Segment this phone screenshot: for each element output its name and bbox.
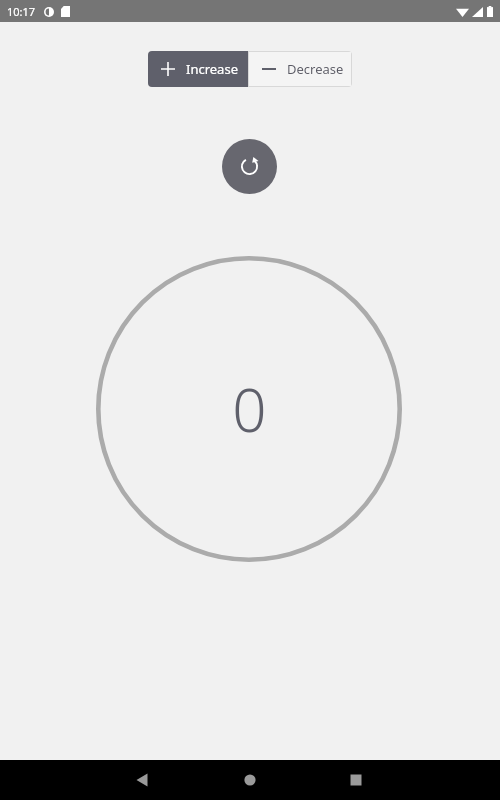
staticText: Increase — [186, 60, 238, 78]
staticText: 0 — [232, 368, 267, 450]
button[interactable]: Back — [120, 760, 500, 800]
button[interactable]: Home — [228, 760, 272, 800]
staticText: 10:17 — [7, 4, 36, 19]
button[interactable]: Recents — [334, 760, 378, 800]
button[interactable]: Refresh — [222, 139, 277, 194]
button[interactable]: Increase — [148, 51, 248, 87]
staticText: Decrease — [287, 60, 344, 78]
button[interactable]: Decrease — [248, 51, 352, 87]
